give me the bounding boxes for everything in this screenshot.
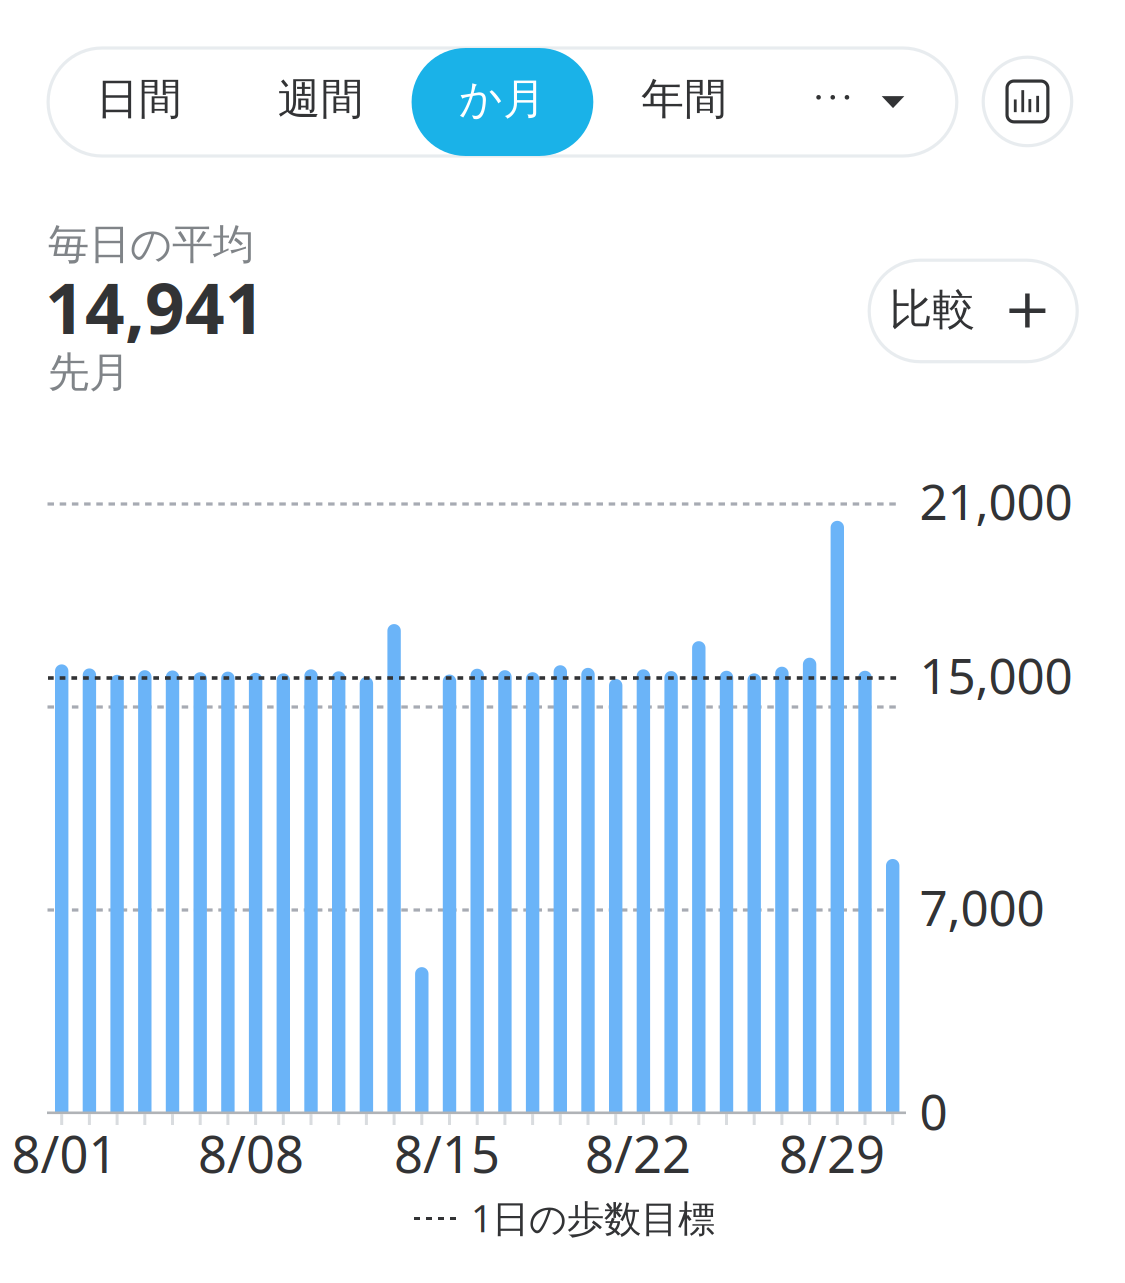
staticText: 14,941	[45, 261, 265, 353]
staticText: か月	[459, 73, 546, 125]
staticText: 15,000	[919, 642, 1072, 707]
staticText: 毎日の平均	[48, 219, 254, 270]
staticText: 1日の歩数目標	[471, 1193, 715, 1243]
staticText: 21,000	[919, 468, 1072, 533]
button[interactable]: 週間	[230, 48, 411, 156]
staticText: 先月	[48, 347, 130, 398]
staticText: 日間	[96, 73, 182, 125]
button[interactable]: グラフの種類	[983, 57, 1072, 146]
staticText: 週間	[278, 73, 364, 125]
staticText: 8/22	[585, 1120, 691, 1187]
staticText: 8/01	[11, 1120, 117, 1187]
staticText: 0	[919, 1078, 947, 1143]
button[interactable]: か月	[412, 48, 593, 156]
staticText: 8/29	[779, 1120, 885, 1187]
staticText: 比較	[890, 283, 976, 336]
staticText: 8/08	[198, 1120, 304, 1187]
button[interactable]: 年間	[593, 48, 775, 156]
button[interactable]: その他の期間	[775, 48, 957, 156]
staticText: 8/15	[394, 1120, 500, 1187]
staticText: 年間	[641, 73, 727, 125]
staticText: 7,000	[919, 874, 1044, 939]
button[interactable]: 日間	[48, 48, 230, 156]
button[interactable]: 比較	[869, 260, 1077, 362]
